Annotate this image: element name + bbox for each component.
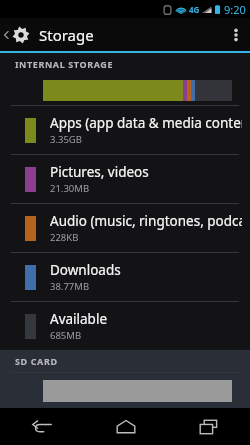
staticText: SD CARD (15, 355, 58, 367)
button[interactable]: Available (0, 302, 250, 350)
staticText: 4G (189, 4, 200, 15)
button[interactable]: Audio (music, ringtones, podcasts) (0, 204, 250, 252)
staticText: 228KB (50, 231, 79, 244)
button[interactable]: Back (0, 408, 84, 445)
button[interactable]: Home (84, 408, 167, 445)
staticText: Audio (music, ringtones, podcasts) (50, 212, 242, 230)
button[interactable]: Navigate up (0, 18, 32, 51)
staticText: 685MB (50, 329, 82, 342)
staticText: 9:20 (224, 2, 246, 17)
button[interactable]: Recent apps (167, 408, 250, 445)
staticText: Downloads (50, 261, 121, 279)
staticText: INTERNAL STORAGE (15, 58, 114, 70)
staticText: Apps (app data & media content) (50, 114, 242, 132)
button[interactable]: Apps (app data & media content) (0, 106, 250, 154)
staticText: Storage (39, 25, 94, 45)
staticText: Available (50, 310, 107, 328)
staticText: 3.35GB (50, 133, 82, 146)
staticText: 21.30MB (50, 182, 90, 195)
button[interactable]: Downloads (0, 253, 250, 301)
button[interactable]: More options (222, 18, 250, 51)
staticText: Pictures, videos (50, 163, 149, 181)
staticText: 38.77MB (50, 280, 90, 293)
button[interactable]: Pictures, videos (0, 155, 250, 203)
